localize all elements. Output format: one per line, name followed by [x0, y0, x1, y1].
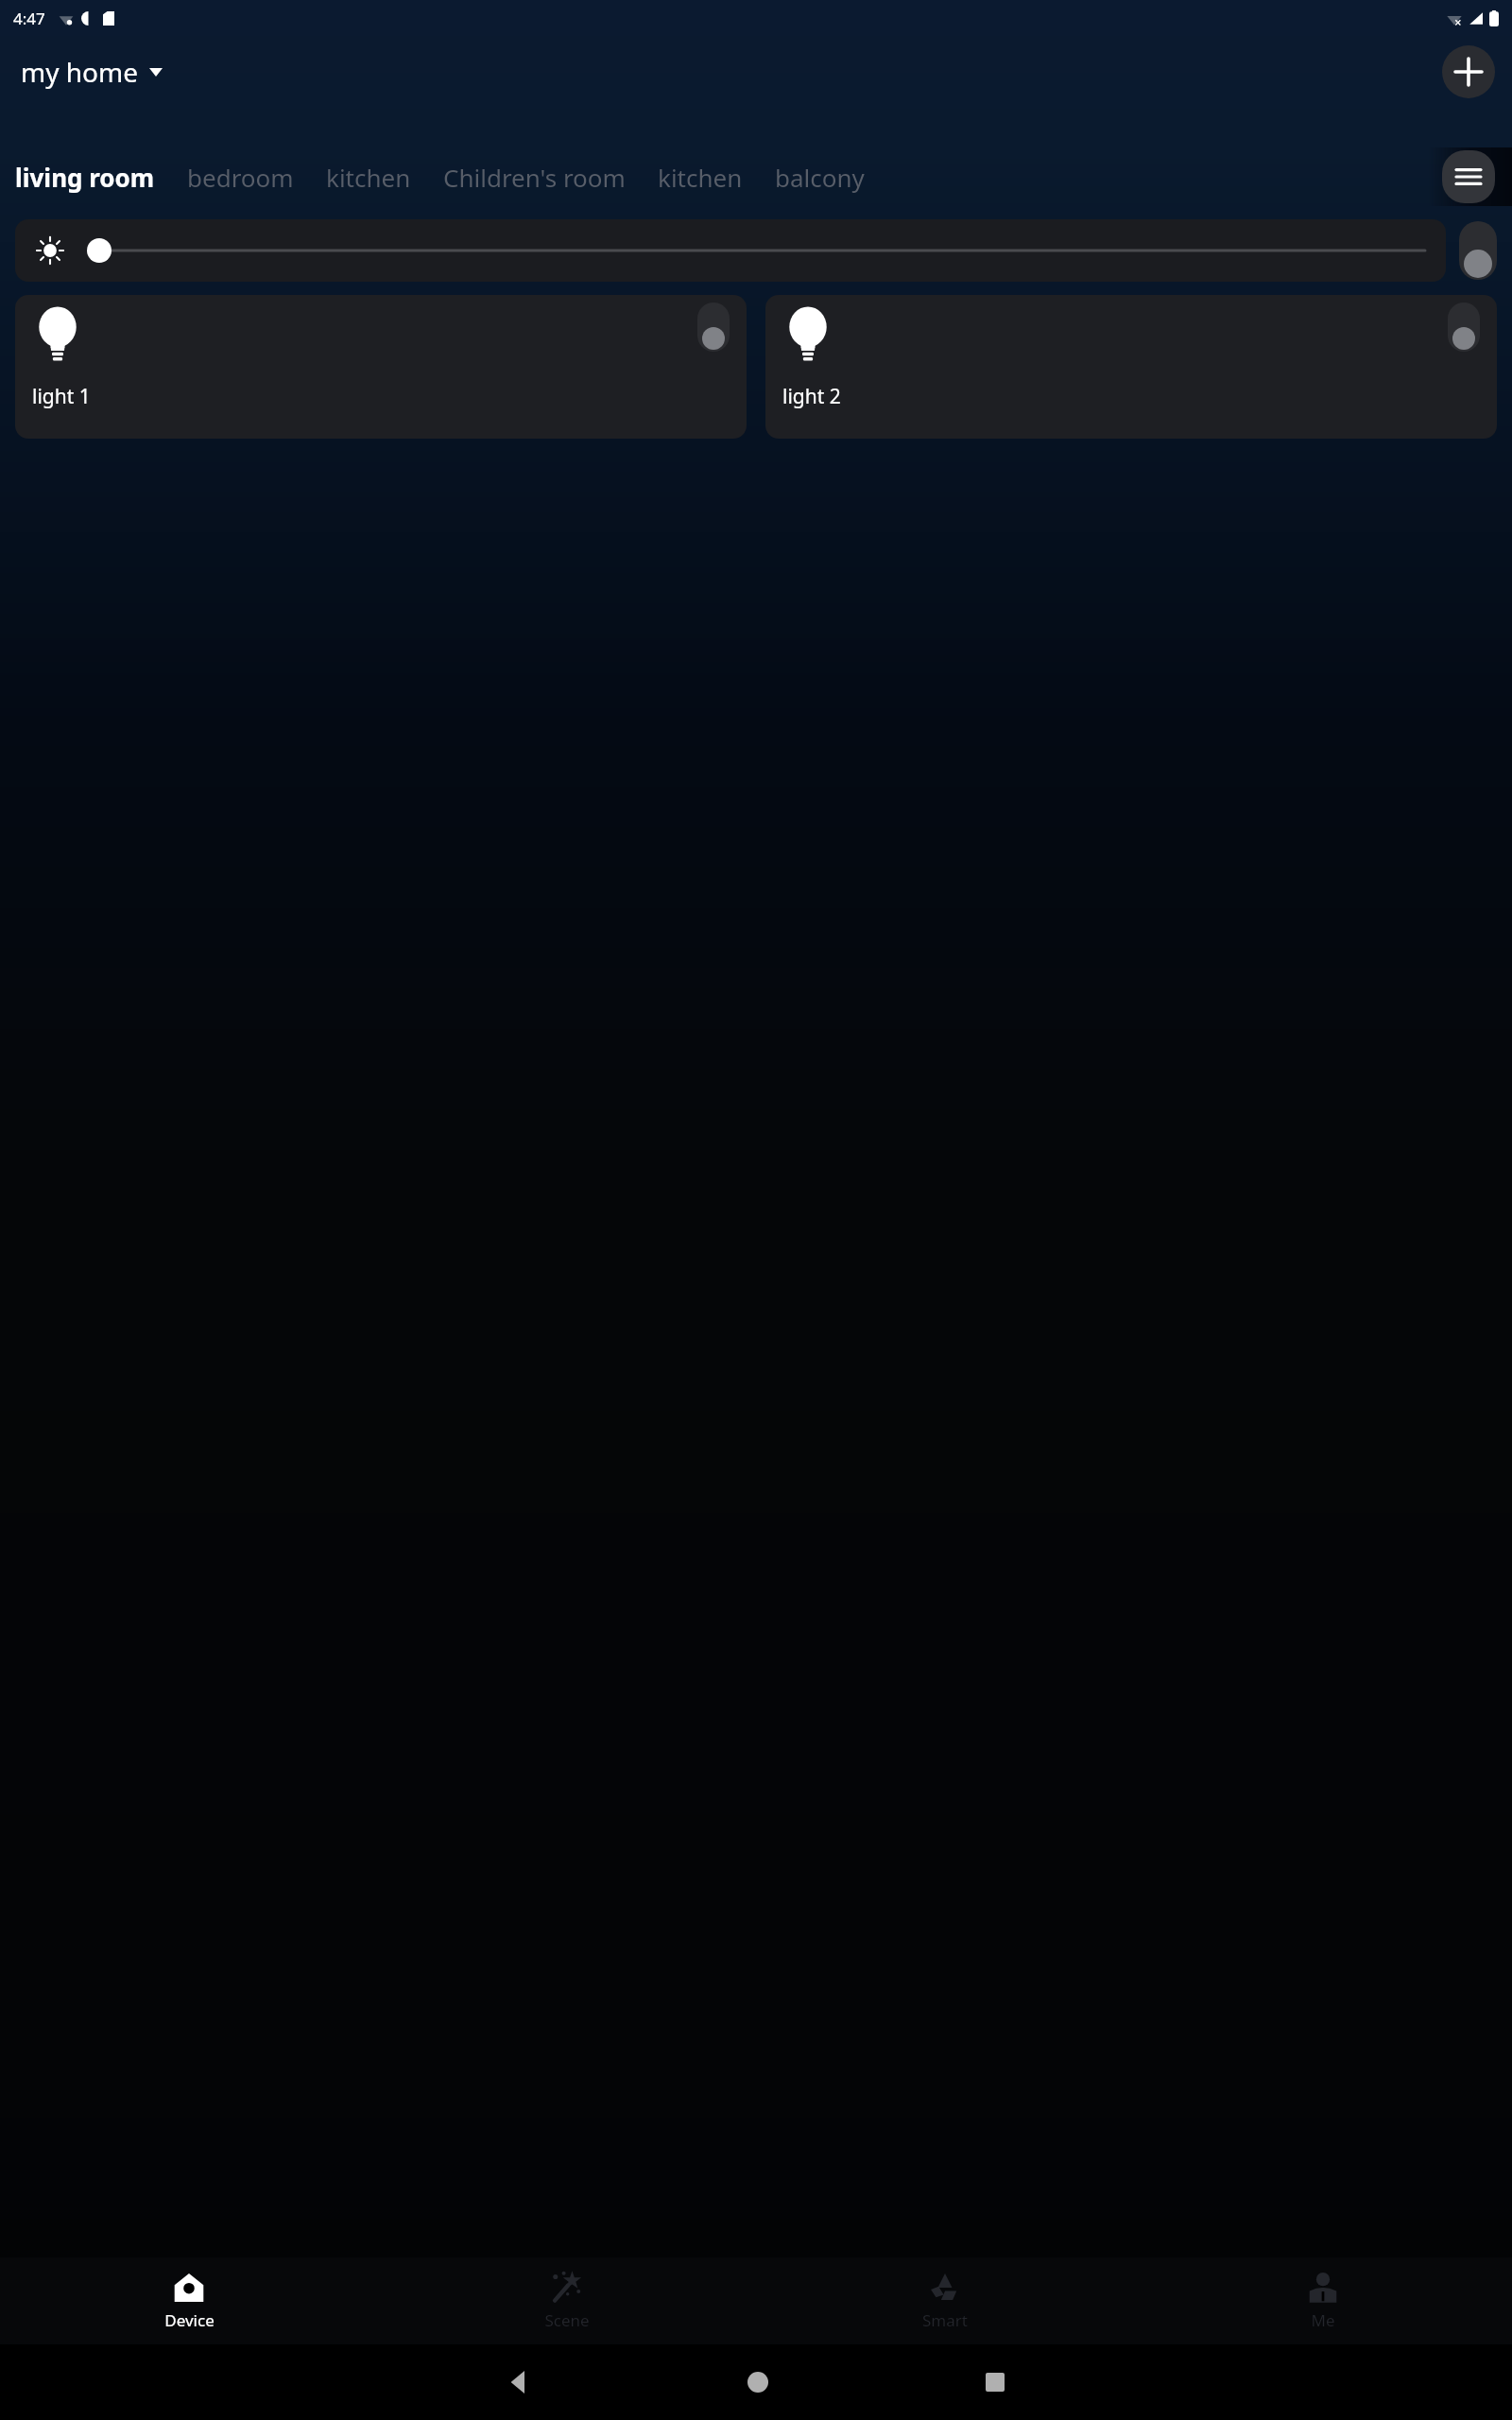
staticText: bedroom — [187, 161, 294, 194]
staticText: Scene — [544, 2309, 590, 2331]
button[interactable]: Toggle light 2 — [1448, 302, 1480, 352]
button[interactable]: Scene — [378, 2257, 756, 2344]
staticText: Children's room — [443, 161, 626, 194]
staticText: light 1 — [32, 383, 91, 410]
button[interactable]: kitchen — [326, 157, 411, 198]
button[interactable]: living room — [15, 157, 155, 198]
button[interactable]: Me — [1134, 2257, 1512, 2344]
staticText: kitchen — [658, 161, 743, 194]
button[interactable]: Device — [0, 2257, 378, 2344]
button[interactable]: Smart — [756, 2257, 1134, 2344]
button[interactable]: kitchen — [658, 157, 743, 198]
button[interactable]: Children's room — [443, 157, 626, 198]
button[interactable]: my home — [15, 48, 168, 95]
button[interactable]: Toggle all lights — [1459, 221, 1497, 280]
staticText: 4:47 — [13, 8, 45, 29]
button[interactable] — [15, 219, 1446, 282]
staticText: living room — [15, 161, 155, 194]
staticText: light 2 — [782, 383, 841, 410]
staticText: my home — [21, 54, 138, 90]
staticText: Smart — [922, 2309, 968, 2331]
button[interactable]: Add device — [1442, 45, 1495, 98]
staticText: balcony — [775, 161, 865, 194]
button[interactable]: balcony — [775, 157, 865, 198]
button[interactable]: Room menu — [1442, 150, 1495, 203]
button[interactable]: light 2 — [765, 295, 1497, 439]
staticText: Me — [1311, 2309, 1335, 2331]
button[interactable]: light 1 — [15, 295, 747, 439]
staticText: Device — [164, 2309, 215, 2331]
staticText: kitchen — [326, 161, 411, 194]
button[interactable]: Toggle light 1 — [697, 302, 730, 352]
button[interactable]: bedroom — [187, 157, 294, 198]
